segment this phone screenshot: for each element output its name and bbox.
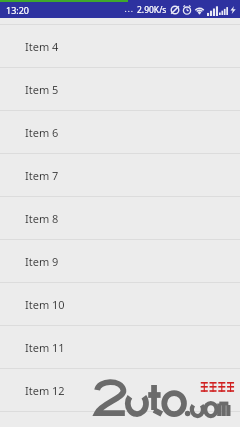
staticText: Item 4 (25, 39, 59, 54)
staticText: Item 8 (25, 211, 59, 226)
staticText: Item 7 (25, 168, 59, 183)
staticText: Item 12 (25, 383, 65, 398)
button[interactable]: Item 12 (0, 369, 240, 411)
staticText: Item 10 (25, 297, 65, 312)
button[interactable]: Item 6 (0, 111, 240, 153)
staticText: Item 9 (25, 254, 59, 269)
button[interactable]: Item 8 (0, 197, 240, 239)
button[interactable]: Item 4 (0, 25, 240, 67)
staticText: 2.90K/s (137, 4, 167, 16)
staticText: Item 5 (25, 82, 59, 97)
button[interactable]: Item 9 (0, 240, 240, 282)
staticText: Item 11 (25, 340, 65, 355)
staticText: 13:20 (6, 4, 30, 16)
button[interactable]: Item 10 (0, 283, 240, 325)
button[interactable]: Item 7 (0, 154, 240, 196)
staticText: Item 6 (25, 125, 59, 140)
button[interactable]: Item 5 (0, 68, 240, 110)
button[interactable]: Item 11 (0, 326, 240, 368)
